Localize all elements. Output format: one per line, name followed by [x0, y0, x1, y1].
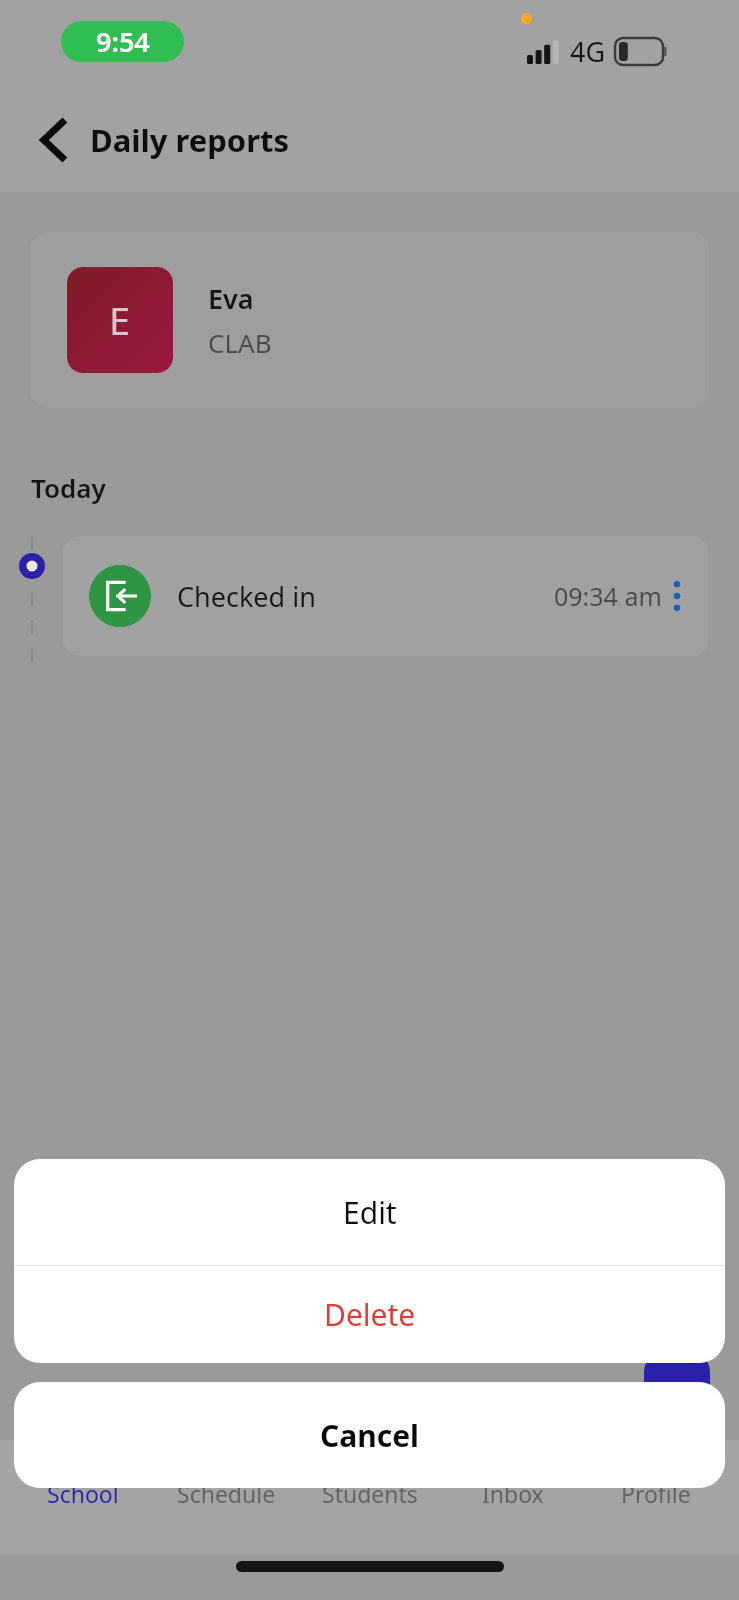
staticText: Today: [31, 470, 106, 505]
button[interactable]: Delete: [14, 1266, 725, 1363]
button[interactable]: School: [23, 1478, 143, 1555]
staticText: CLAB: [208, 325, 272, 360]
button[interactable]: Checked in: [63, 536, 708, 656]
staticText: Daily reports: [90, 119, 290, 161]
staticText: Cancel: [320, 1415, 420, 1456]
button[interactable]: Schedule: [166, 1478, 286, 1555]
button[interactable]: Add: [644, 1352, 710, 1418]
staticText: Inbox: [482, 1478, 544, 1509]
staticText: Eva: [208, 280, 254, 317]
staticText: 09:34 am: [554, 579, 662, 613]
button[interactable]: Back: [24, 110, 84, 170]
staticText: School: [47, 1478, 119, 1509]
staticText: E: [109, 294, 131, 346]
button[interactable]: Students: [310, 1478, 430, 1555]
button[interactable]: More options: [666, 573, 688, 619]
button[interactable]: E: [30, 232, 709, 408]
staticText: Checked in: [177, 578, 316, 615]
staticText: Profile: [621, 1478, 691, 1509]
staticText: 4G: [570, 33, 606, 70]
button[interactable]: Cancel: [14, 1382, 725, 1488]
staticText: 9:54: [96, 23, 150, 60]
staticText: Edit: [343, 1192, 397, 1233]
button[interactable]: Edit: [14, 1159, 725, 1265]
staticText: Students: [322, 1478, 418, 1509]
staticText: Delete: [324, 1294, 416, 1335]
button[interactable]: Profile: [596, 1478, 716, 1555]
button[interactable]: Inbox: [453, 1478, 573, 1555]
staticText: Schedule: [177, 1478, 276, 1509]
